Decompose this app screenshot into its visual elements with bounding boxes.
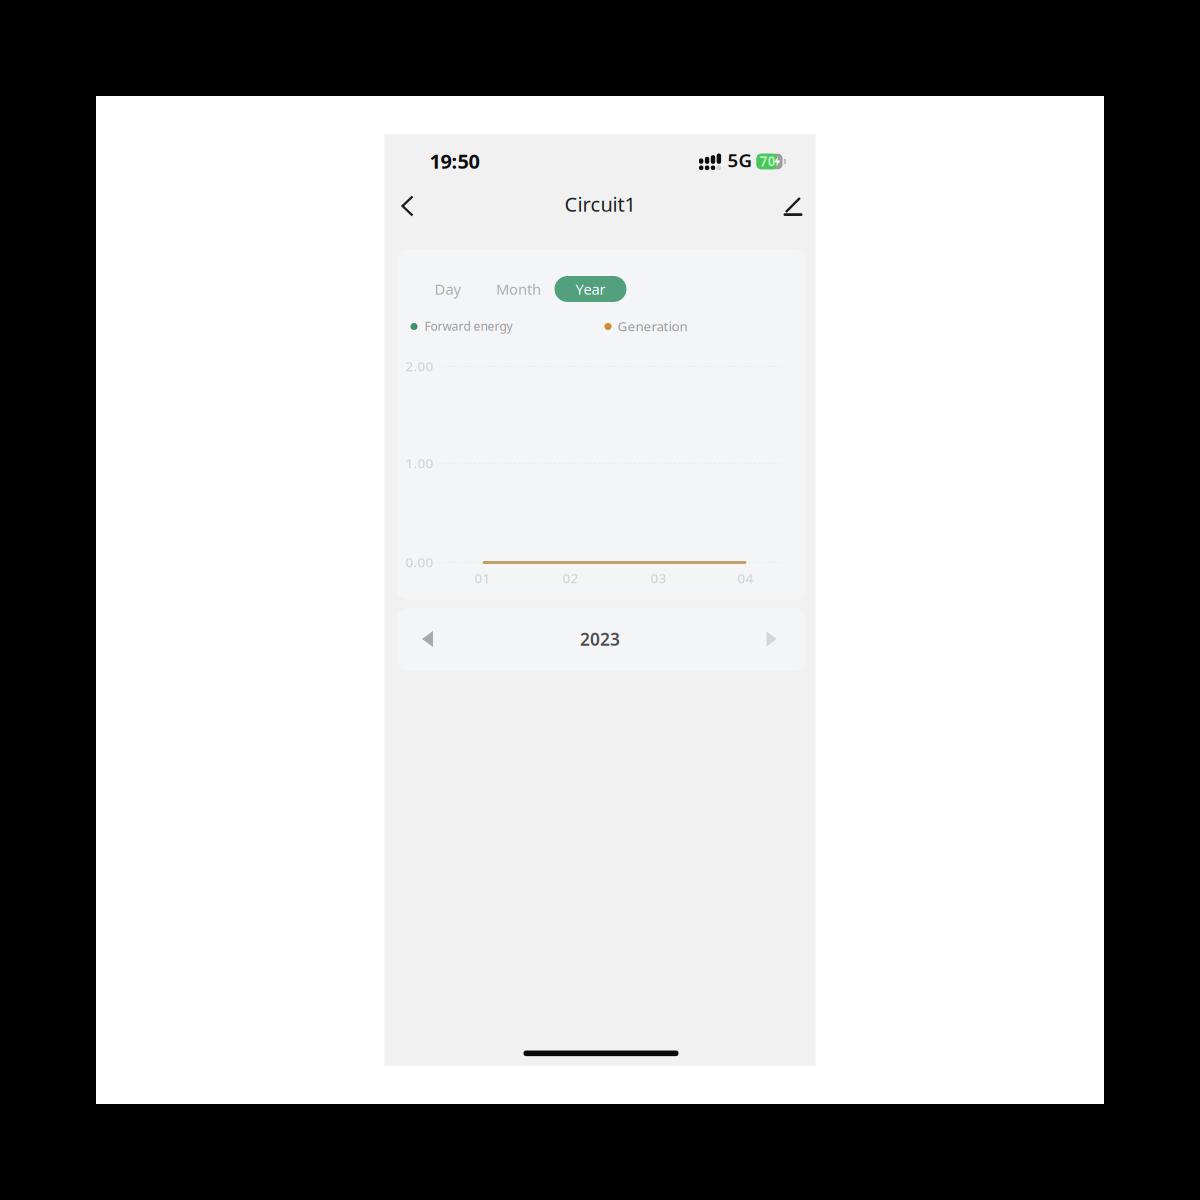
button[interactable]: Month xyxy=(494,276,542,302)
staticText: 03 xyxy=(650,569,666,587)
staticText: 2.00 xyxy=(405,357,433,375)
button[interactable]: Previous year xyxy=(406,618,448,660)
staticText: 1.00 xyxy=(405,454,433,472)
staticText: 0.00 xyxy=(405,553,433,571)
button[interactable]: Year xyxy=(554,276,626,302)
staticText: Year xyxy=(575,279,605,299)
staticText: 01 xyxy=(474,569,490,587)
button[interactable]: Back xyxy=(387,186,427,226)
staticText: Month xyxy=(496,279,541,299)
button[interactable]: Day xyxy=(429,276,465,302)
staticText: 2023 xyxy=(580,627,620,650)
staticText: Forward energy xyxy=(424,318,512,334)
staticText: Generation xyxy=(617,317,687,335)
staticText: 02 xyxy=(562,569,578,587)
button[interactable]: Next year xyxy=(750,618,792,660)
staticText: Circuit1 xyxy=(564,191,635,217)
staticText: 04 xyxy=(737,569,753,587)
staticText: 5G xyxy=(727,148,752,172)
button[interactable]: Edit name xyxy=(773,186,813,226)
staticText: 19:50 xyxy=(429,148,479,174)
staticText: Day xyxy=(434,279,460,299)
staticText: 70 xyxy=(760,152,776,170)
